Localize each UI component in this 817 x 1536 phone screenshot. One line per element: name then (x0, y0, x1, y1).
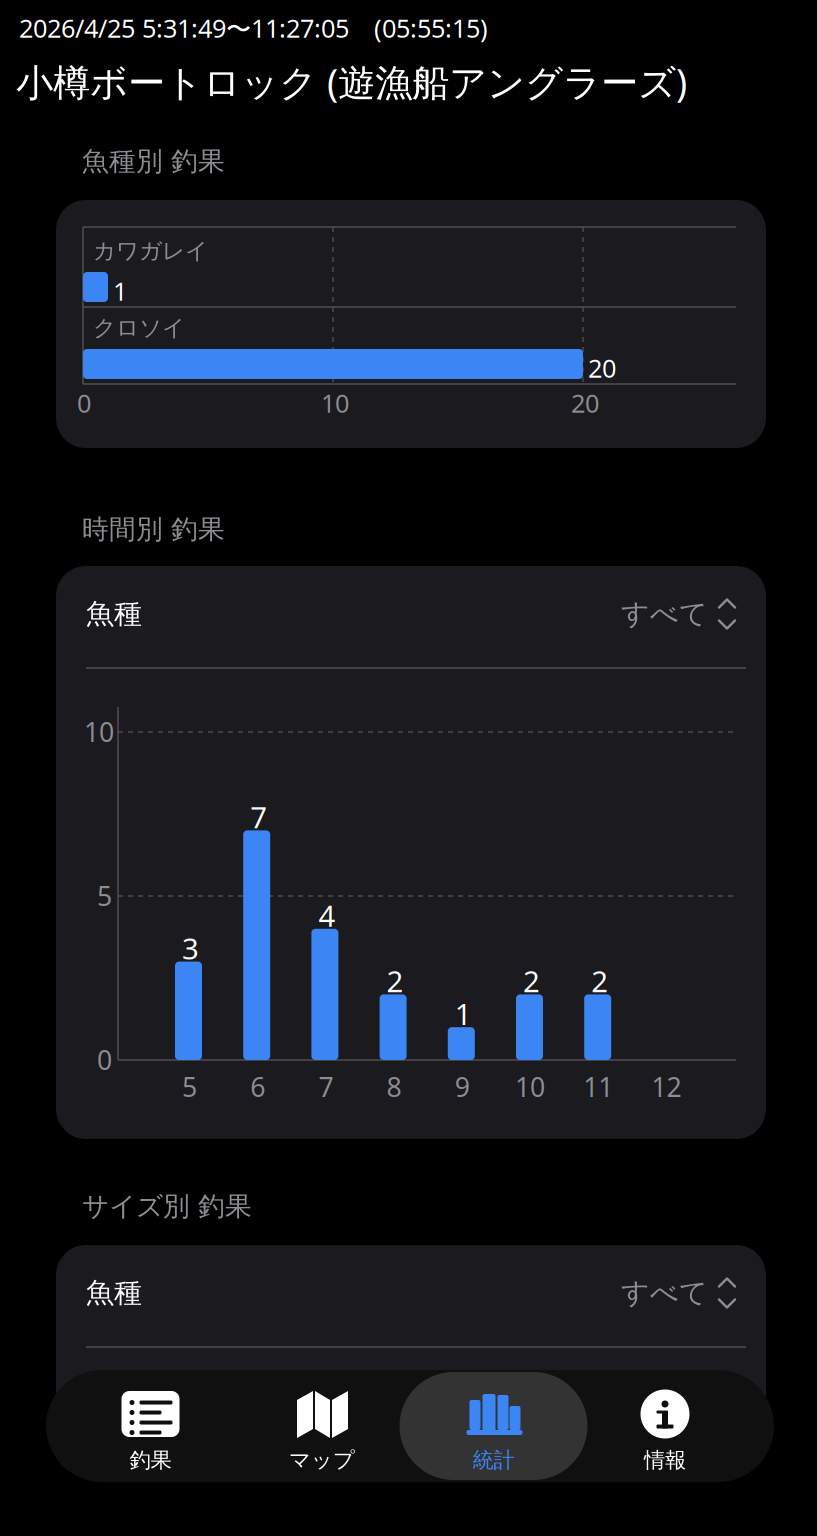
staticText: 11 (583, 1069, 613, 1104)
staticText: 情報 (644, 1447, 686, 1473)
staticText: サイズ別 釣果 (82, 1190, 252, 1223)
staticText: 10 (515, 1069, 545, 1104)
button[interactable]: 魚種 (86, 592, 736, 636)
staticText: 2 (523, 961, 540, 1000)
button[interactable]: 魚種 (86, 1271, 736, 1315)
staticText: 9 (455, 1069, 470, 1104)
staticText: 3 (182, 929, 199, 968)
staticText: 20 (588, 351, 616, 385)
staticText: 5 (182, 1069, 197, 1104)
staticText: 4 (318, 896, 335, 935)
staticText: 6 (250, 1069, 265, 1104)
staticText: 12 (651, 1069, 681, 1104)
button[interactable]: 情報 (571, 1370, 759, 1482)
staticText: 7 (250, 797, 267, 836)
staticText: 10 (321, 386, 349, 420)
staticText: 釣果 (129, 1447, 171, 1473)
staticText: 統計 (472, 1447, 514, 1473)
staticText: 魚種 (86, 1276, 142, 1310)
staticText: すべて (621, 1276, 708, 1310)
staticText: 5 (97, 878, 112, 913)
button[interactable]: マップ (228, 1370, 416, 1482)
staticText: 0 (77, 386, 91, 420)
staticText: 20 (571, 386, 599, 420)
button[interactable]: 統計 (399, 1370, 587, 1482)
staticText: 魚種別 釣果 (82, 145, 225, 178)
staticText: 時間別 釣果 (82, 513, 225, 546)
staticText: 2 (387, 961, 404, 1000)
staticText: 2 (591, 961, 608, 1000)
staticText: 1 (113, 274, 127, 308)
staticText: 8 (387, 1069, 402, 1104)
staticText: 10 (84, 714, 114, 749)
staticText: 小樽ボートロック (遊漁船アングラーズ) (16, 57, 687, 107)
staticText: 7 (318, 1069, 333, 1104)
button[interactable]: 釣果 (56, 1370, 244, 1482)
staticText: 2026/4/25 5:31:49〜11:27:05 (05:55:15) (19, 11, 488, 45)
staticText: クロソイ (93, 314, 185, 342)
staticText: マップ (289, 1447, 355, 1473)
staticText: カワガレイ (93, 237, 208, 265)
staticText: 0 (97, 1042, 112, 1077)
staticText: 魚種 (86, 597, 142, 631)
staticText: すべて (621, 597, 708, 631)
staticText: 1 (455, 994, 472, 1033)
